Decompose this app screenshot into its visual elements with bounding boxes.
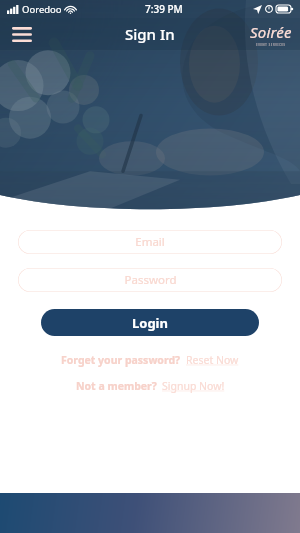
button[interactable]: Email (18, 230, 282, 254)
staticText: Login (132, 314, 168, 332)
staticText: EVENT SERVICES (256, 43, 286, 47)
staticText: Not a member? (76, 379, 157, 393)
staticText: Forget your password? (61, 353, 181, 367)
button[interactable]: Soiree logo (250, 22, 292, 47)
staticText: Ooredoo (22, 3, 62, 16)
button[interactable]: Reset Now (186, 353, 239, 367)
staticText: Email (135, 234, 165, 250)
button[interactable]: Login (41, 309, 259, 336)
staticText: 7:39 PM (145, 2, 183, 16)
button[interactable]: Signup Now! (162, 379, 225, 393)
button[interactable]: Open navigation menu (9, 23, 35, 45)
button[interactable]: Password (18, 268, 282, 292)
staticText: Reset Now (186, 353, 239, 367)
staticText: Sign In (125, 24, 175, 44)
staticText: Signup Now! (162, 379, 225, 393)
staticText: Soirée (250, 22, 292, 42)
staticText: Password (124, 272, 177, 288)
